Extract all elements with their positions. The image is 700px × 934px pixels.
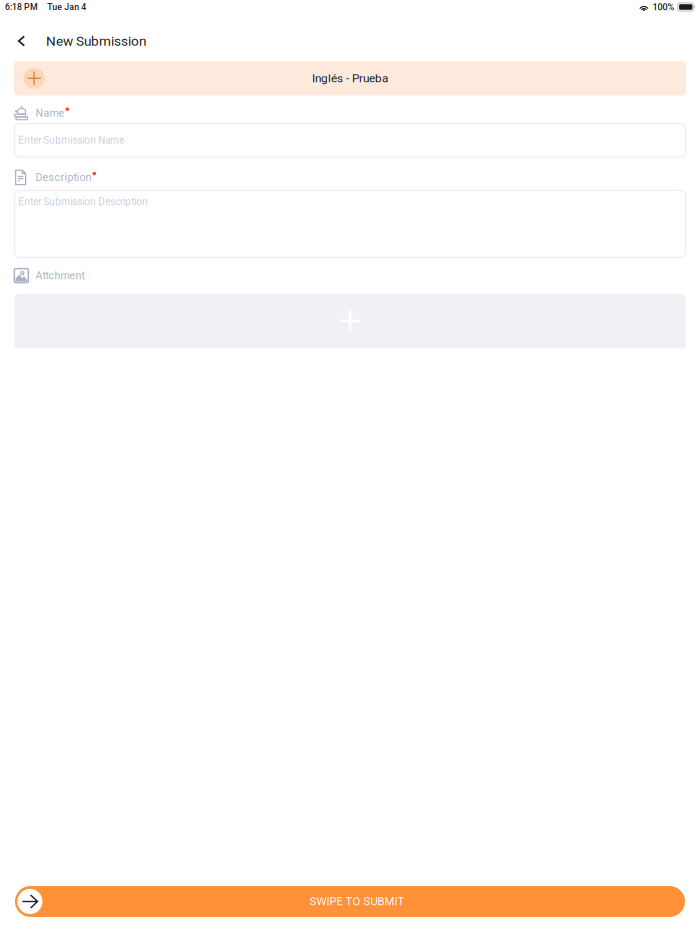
- staticText: Tue Jan 4: [47, 2, 86, 12]
- staticText: Inglés - Prueba: [312, 71, 388, 85]
- staticText: 6:18 PM: [5, 2, 38, 12]
- button[interactable]: Enter Submission Name: [0, 121, 700, 157]
- staticText: Enter Submission Name: [18, 134, 124, 146]
- staticText: Description: [35, 171, 91, 184]
- staticText: New Submission: [46, 33, 147, 49]
- button[interactable]: Inglés - Prueba: [0, 61, 700, 95]
- staticText: Attchment: [35, 269, 84, 282]
- button[interactable]: Enter Submission Description: [0, 185, 700, 257]
- staticText: SWIPE TO SUBMIT: [309, 895, 404, 908]
- staticText: 100%: [652, 2, 674, 12]
- staticText: Name: [35, 107, 64, 119]
- button[interactable]: Back: [6, 26, 36, 56]
- button[interactable]: Add attachment: [0, 284, 700, 348]
- button[interactable]: SWIPE TO SUBMIT: [0, 886, 700, 934]
- staticText: Enter Submission Description: [18, 196, 148, 208]
